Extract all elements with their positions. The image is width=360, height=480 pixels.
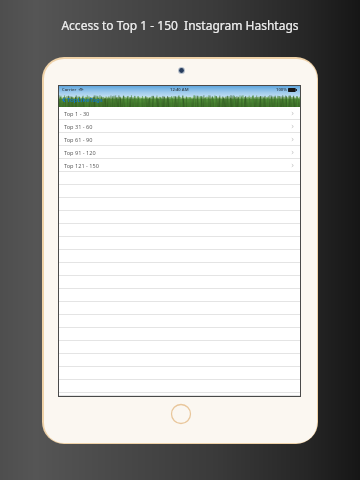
staticText: 100% xyxy=(276,87,287,93)
button[interactable]: Back to TopLikeTags xyxy=(61,94,103,105)
staticText: TopLikeTags xyxy=(67,96,103,104)
button[interactable]: Top 91 - 120 xyxy=(59,146,300,159)
staticText: Top 91 - 120 xyxy=(64,149,96,157)
staticText: Top 31 - 60 xyxy=(64,123,93,131)
button[interactable]: Top 1 - 30 xyxy=(59,107,300,120)
staticText: Access to Top 1 - 150 Instagram Hashtags xyxy=(0,17,360,33)
button[interactable]: Home xyxy=(170,403,192,425)
button[interactable]: Top 31 - 60 xyxy=(59,120,300,133)
button[interactable]: Top 121 - 150 xyxy=(59,159,300,172)
staticText: Top 61 - 90 xyxy=(64,136,93,144)
staticText: Top 1 - 30 xyxy=(64,110,90,118)
staticText: Carrier xyxy=(62,87,77,93)
staticText: Top 121 - 150 xyxy=(64,162,99,170)
button[interactable]: Top 61 - 90 xyxy=(59,133,300,146)
staticText: 12:40 AM xyxy=(170,87,189,93)
